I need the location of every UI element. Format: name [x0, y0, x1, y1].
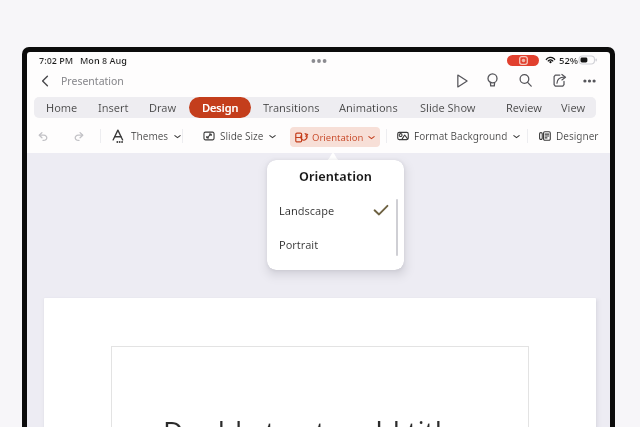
staticText: Design [202, 100, 239, 115]
button[interactable]: Ideas [482, 68, 502, 93]
button[interactable]: Themes [112, 127, 181, 145]
button[interactable]: Redo [69, 127, 87, 145]
button[interactable]: More options [579, 68, 599, 93]
button[interactable]: Screen recording [507, 55, 539, 66]
button[interactable]: Designer [539, 127, 599, 145]
button[interactable]: Draw [131, 97, 195, 118]
button[interactable]: Share [549, 68, 569, 93]
button[interactable]: Orientation [290, 127, 380, 147]
button[interactable]: Review [492, 97, 556, 118]
button[interactable]: Animations [336, 97, 400, 118]
staticText: Insert [98, 100, 129, 115]
button[interactable]: Landscape [267, 197, 404, 223]
staticText: Animations [339, 100, 398, 115]
staticText: Home [46, 100, 78, 115]
staticText: Designer [556, 129, 599, 143]
staticText: Portrait [279, 237, 319, 252]
staticText: Review [506, 100, 542, 115]
staticText: View [561, 100, 586, 115]
staticText: Slide Show [420, 100, 476, 115]
staticText: Themes [131, 129, 169, 143]
button[interactable]: Portrait [267, 231, 404, 257]
button[interactable]: Format Background [397, 127, 520, 145]
staticText: Presentation [61, 74, 124, 88]
staticText: Slide Size [220, 129, 264, 143]
staticText: 52% [559, 54, 579, 67]
staticText: Mon 8 Aug [80, 54, 127, 66]
button[interactable]: Design [189, 97, 251, 118]
button[interactable]: Slide Show [416, 97, 480, 118]
staticText: Orientation [312, 131, 364, 144]
button[interactable]: Undo [34, 127, 52, 145]
button[interactable]: Present [452, 68, 472, 93]
button[interactable]: Transitions [259, 97, 323, 118]
staticText: Transitions [263, 100, 320, 115]
other: Back [37, 73, 53, 89]
staticText: Draw [149, 100, 177, 115]
staticText: Landscape [279, 203, 335, 218]
button[interactable]: Back [27, 73, 130, 89]
button[interactable]: View [541, 97, 596, 118]
button[interactable]: Insert [81, 97, 145, 118]
staticText: 7:02 PM [39, 54, 74, 66]
staticText: Orientation [299, 168, 372, 185]
staticText: Double tap to add title [163, 412, 458, 427]
button[interactable]: Home [34, 97, 94, 118]
button[interactable]: Slide Size [203, 127, 276, 145]
staticText: Format Background [414, 129, 508, 143]
button[interactable]: Search [515, 68, 535, 93]
